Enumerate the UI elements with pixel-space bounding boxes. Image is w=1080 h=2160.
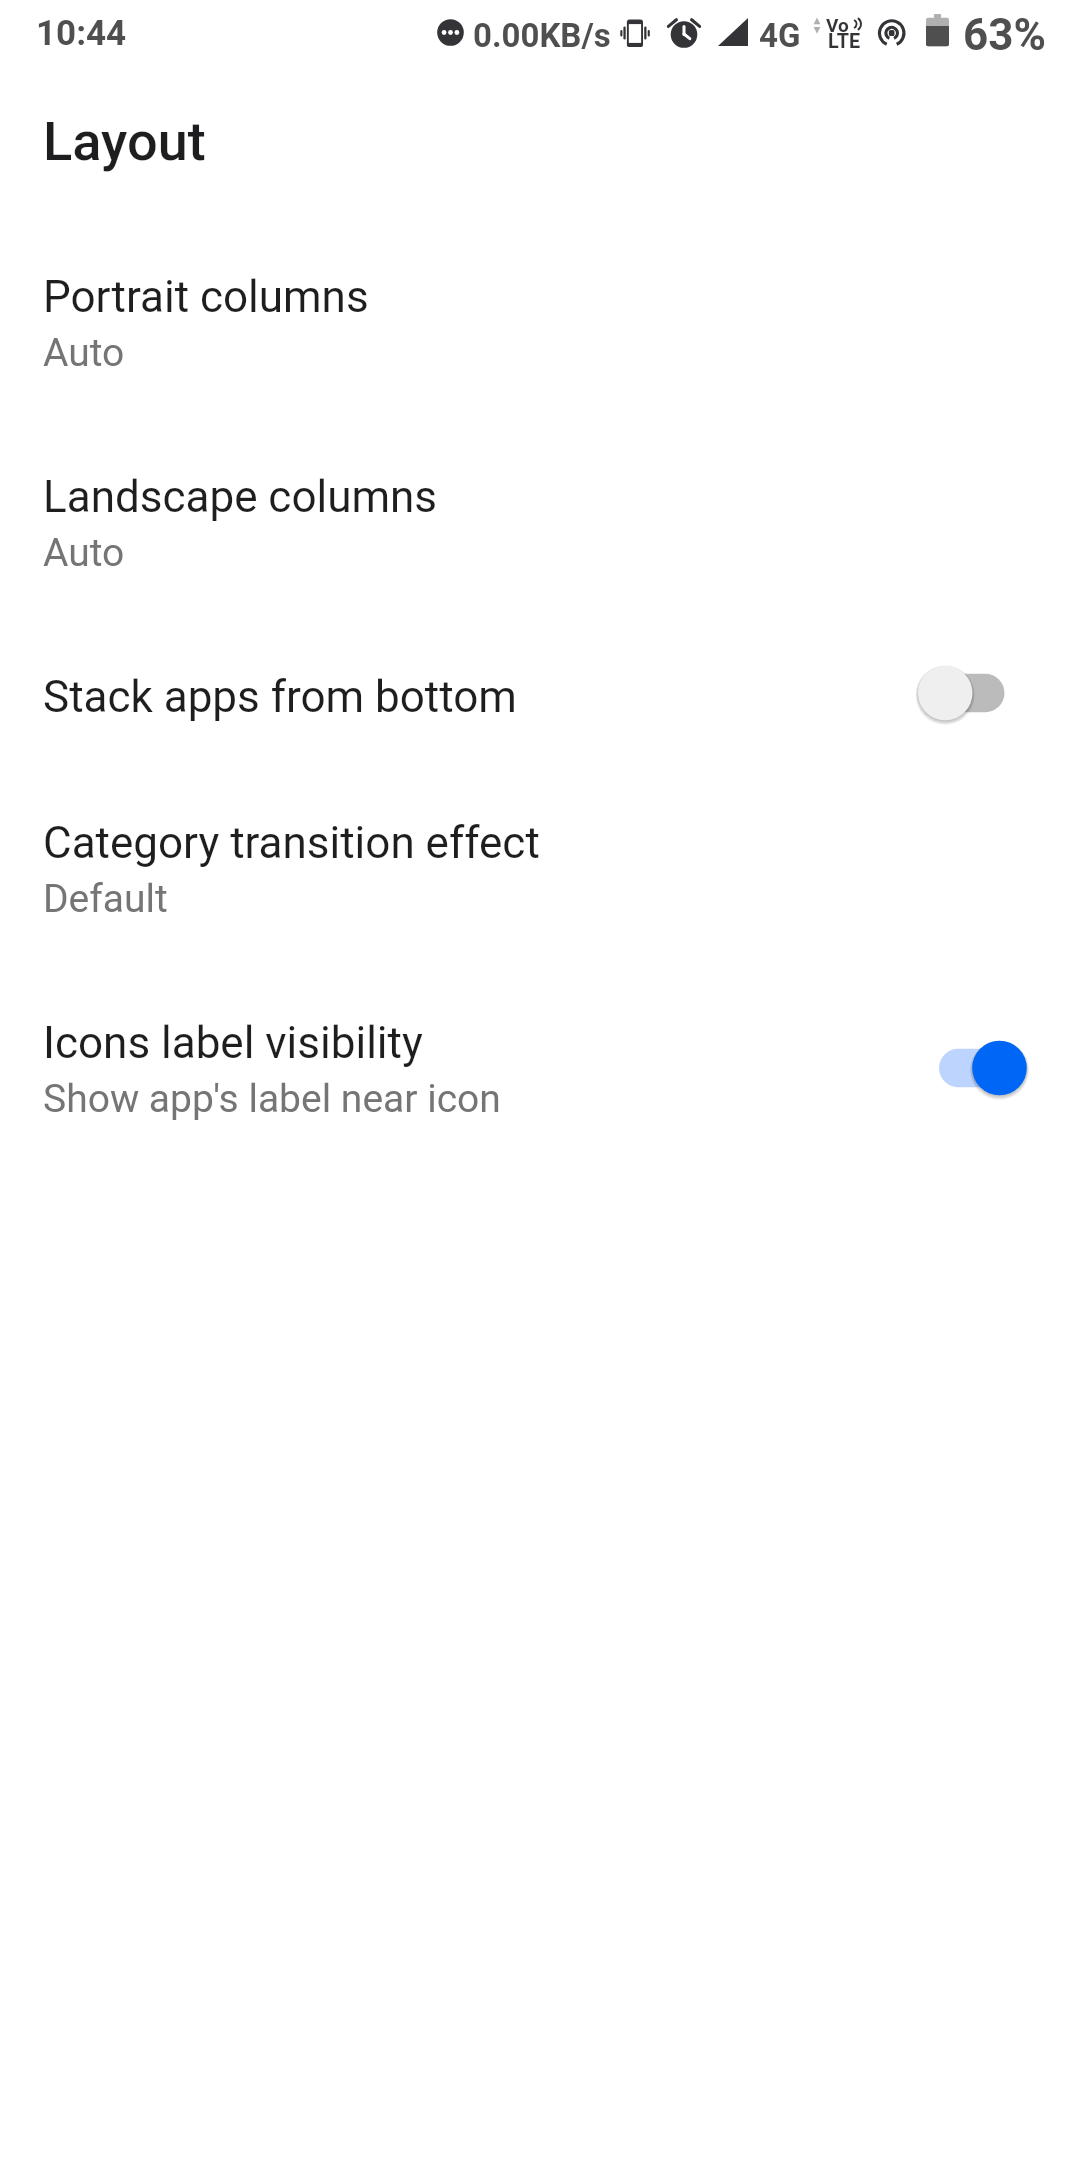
staticText: Show app's label near icon bbox=[43, 1076, 501, 1122]
staticText: 10:44 bbox=[36, 13, 127, 54]
button[interactable]: Landscape columns bbox=[0, 423, 1080, 623]
staticText: Category transition effect bbox=[43, 817, 540, 869]
staticText: Vo bbox=[826, 14, 849, 36]
staticText: Auto bbox=[43, 530, 125, 576]
button[interactable]: Toggle on bbox=[908, 1023, 1038, 1113]
staticText: Portrait columns bbox=[43, 271, 369, 323]
staticText: Auto bbox=[43, 330, 125, 376]
staticText: 63% bbox=[963, 9, 1046, 61]
button[interactable]: Icons label visibility bbox=[0, 969, 1080, 1169]
staticText: Landscape columns bbox=[43, 471, 438, 523]
button[interactable]: Portrait columns bbox=[0, 223, 1080, 423]
staticText: 4G bbox=[759, 16, 801, 55]
staticText: Default bbox=[43, 876, 168, 922]
button[interactable]: Category transition effect bbox=[0, 769, 1080, 969]
staticText: Layout bbox=[43, 110, 206, 173]
staticText: 0.00KB/s bbox=[473, 16, 611, 55]
button[interactable]: Stack apps from bottom bbox=[0, 623, 1080, 769]
staticText: LTE bbox=[828, 30, 861, 53]
button[interactable]: Toggle off bbox=[908, 648, 1038, 738]
staticText: Stack apps from bottom bbox=[43, 671, 517, 723]
staticText: Icons label visibility bbox=[43, 1017, 423, 1069]
